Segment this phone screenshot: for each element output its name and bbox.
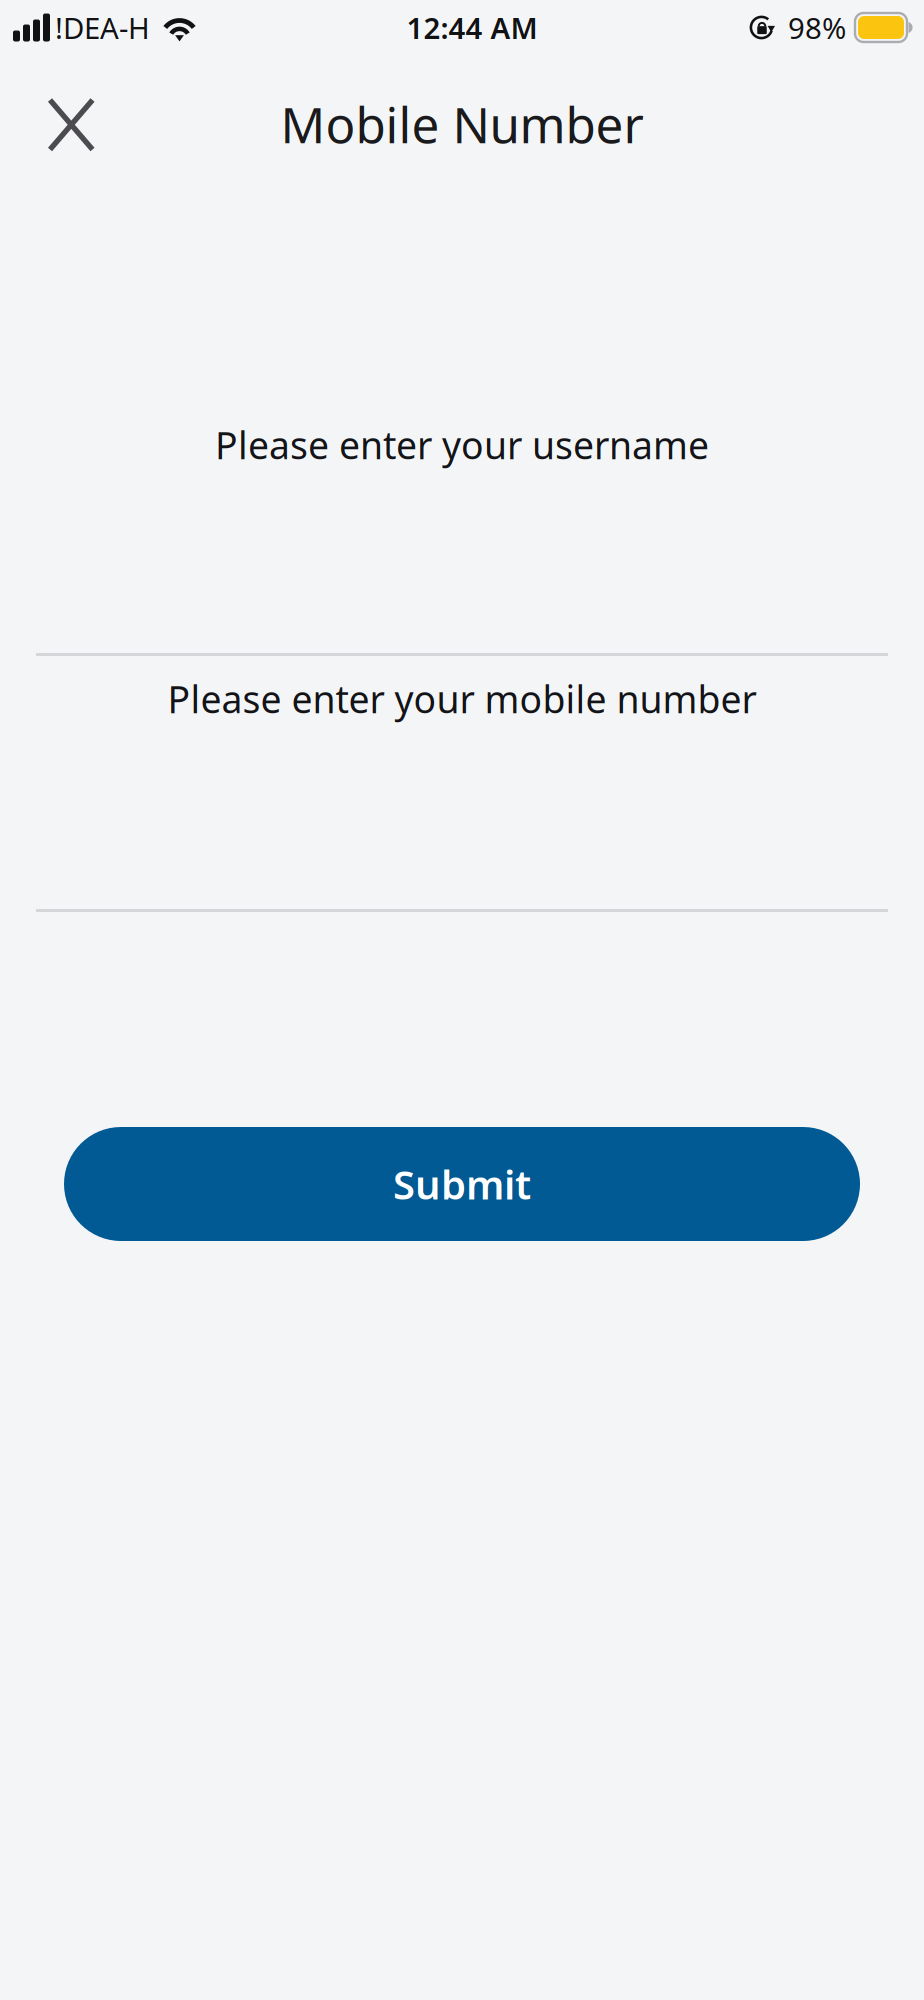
button[interactable]: Please enter your mobile number [36, 656, 888, 912]
button[interactable]: Please enter your username [36, 179, 888, 656]
staticText: 98% [788, 8, 846, 47]
staticText: Submit [393, 1157, 531, 1210]
staticText: 12:44 AM [406, 8, 537, 47]
button[interactable]: Close [33, 81, 109, 167]
staticText: Mobile Number [280, 91, 643, 157]
button[interactable]: Submit [64, 1127, 860, 1241]
staticText: Please enter your username [215, 420, 709, 470]
staticText: Please enter your mobile number [167, 674, 756, 724]
staticText: !DEA-H [55, 8, 150, 47]
